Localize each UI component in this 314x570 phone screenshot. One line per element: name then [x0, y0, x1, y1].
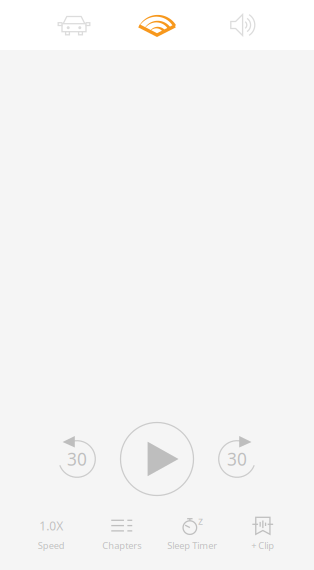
- button[interactable]: Back 30 seconds: [54, 436, 100, 482]
- button[interactable]: Forward 30 seconds: [214, 436, 260, 482]
- staticText: + Clip: [251, 539, 274, 552]
- staticText: Chapters: [102, 539, 141, 552]
- button[interactable]: + Clip: [227, 508, 298, 556]
- button[interactable]: z: [157, 508, 227, 556]
- button[interactable]: Audible: [134, 11, 180, 39]
- staticText: z: [198, 513, 203, 528]
- button[interactable]: Audio output: [230, 13, 256, 36]
- staticText: 1.0X: [39, 518, 63, 534]
- staticText: 30: [67, 447, 87, 470]
- button[interactable]: Car mode: [57, 14, 91, 35]
- button[interactable]: 1.0X: [16, 508, 86, 556]
- button[interactable]: Play: [120, 422, 193, 495]
- staticText: Speed: [38, 539, 65, 552]
- button[interactable]: Chapters: [86, 508, 157, 556]
- staticText: 30: [227, 447, 247, 470]
- staticText: Sleep Timer: [167, 539, 217, 552]
